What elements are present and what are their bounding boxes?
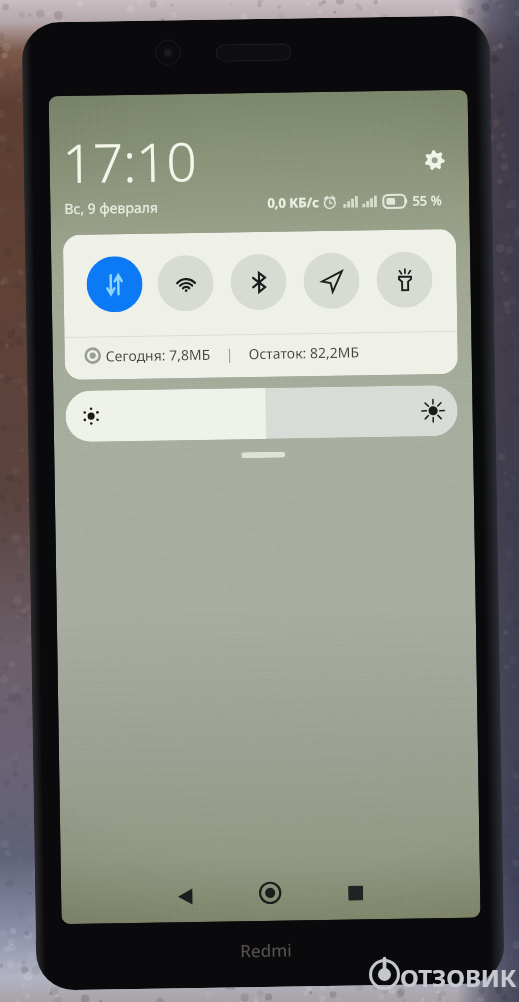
button[interactable] [303,252,360,309]
button[interactable]: Settings [416,142,453,178]
staticText: 17:10 [62,124,197,198]
button[interactable] [86,256,143,313]
button[interactable] [157,255,214,312]
button[interactable]: Recents [337,874,373,911]
staticText: Остаток: 82,2МБ [248,342,360,363]
button[interactable]: Home [252,875,288,911]
button[interactable] [241,452,285,458]
staticText: 55 % [412,191,442,210]
staticText: 0,0 КБ/с [267,193,319,212]
button[interactable] [230,254,287,310]
staticText: ОТЗОВИК [400,961,517,994]
button[interactable]: Back [167,878,203,914]
staticText: Сегодня: 7,8МБ [106,345,211,365]
button[interactable] [376,251,433,308]
staticText: | [225,344,234,363]
staticText: Redmi [240,938,292,962]
staticText: Вс, 9 февраля [64,198,158,218]
button[interactable] [65,385,458,442]
